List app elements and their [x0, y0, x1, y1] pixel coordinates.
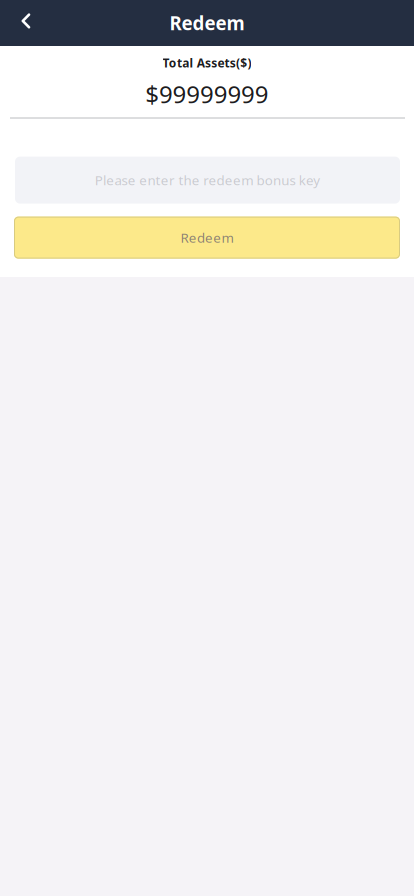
- staticText: Redeem: [169, 11, 244, 35]
- button[interactable]: Back: [0, 0, 48, 46]
- staticText: Total Assets($): [163, 55, 251, 71]
- staticText: Please enter the redeem bonus key: [95, 171, 320, 189]
- staticText: $99999999: [145, 78, 269, 110]
- button[interactable]: Redeem: [0, 217, 414, 259]
- button[interactable]: Please enter the redeem bonus key: [0, 157, 414, 204]
- staticText: Redeem: [180, 229, 233, 246]
